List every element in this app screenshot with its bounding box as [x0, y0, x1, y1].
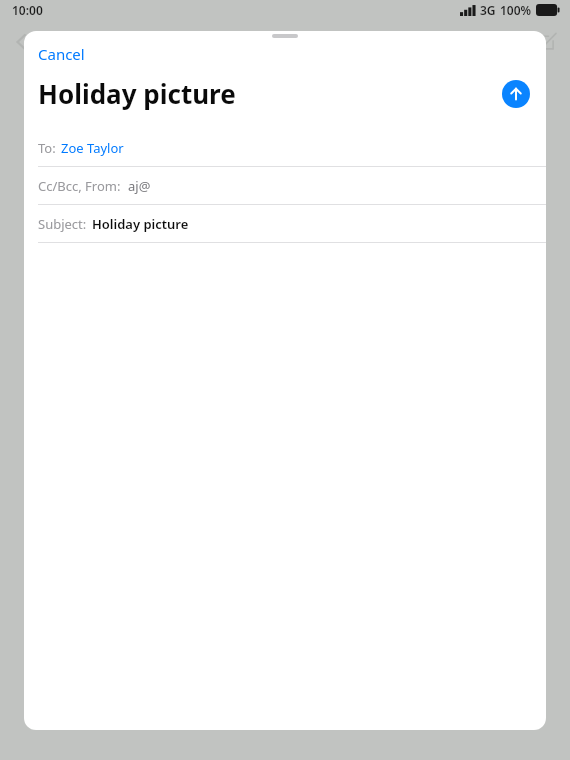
staticText: 100% — [500, 2, 532, 18]
staticText: 3G — [480, 2, 496, 18]
button[interactable]: Subject: — [24, 205, 546, 242]
staticText: aj@ — [128, 177, 151, 195]
button[interactable]: Send — [502, 80, 530, 108]
button[interactable]: Back — [8, 28, 36, 56]
staticText: Subject: — [38, 215, 87, 233]
staticText: Cancel — [38, 44, 85, 64]
button[interactable]: Compose — [532, 27, 562, 57]
staticText: To: — [38, 139, 56, 157]
button[interactable]: Move to folder — [482, 27, 512, 57]
staticText: Zoe Taylor — [61, 139, 124, 157]
button[interactable]: Delete — [432, 27, 462, 57]
button[interactable]: To: — [24, 129, 546, 166]
staticText: Cc/Bcc, From: — [38, 177, 121, 195]
button[interactable]: Cancel — [32, 41, 91, 67]
staticText: 10:00 — [12, 2, 43, 18]
staticText: Holiday picture — [92, 215, 189, 233]
staticText: Holiday picture — [38, 76, 236, 111]
button[interactable]: Cc/Bcc, From: — [24, 167, 546, 204]
